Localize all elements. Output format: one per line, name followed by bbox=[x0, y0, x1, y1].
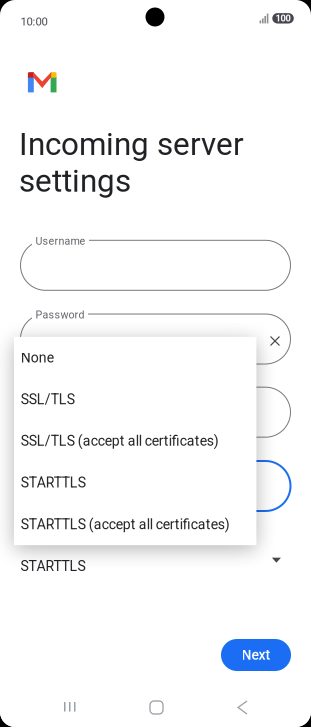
staticText: Incoming server bbox=[19, 126, 244, 163]
staticText: SSL/TLS (accept all certificates) bbox=[21, 433, 219, 449]
staticText: STARTTLS bbox=[20, 558, 85, 574]
button[interactable]: Recents bbox=[54, 692, 85, 721]
button[interactable]: None bbox=[14, 337, 256, 379]
staticText: STARTTLS (accept all certificates) bbox=[21, 516, 230, 533]
button[interactable]: STARTTLS bbox=[20, 548, 294, 588]
staticText: settings bbox=[19, 163, 131, 199]
staticText: Server bbox=[35, 382, 66, 394]
staticText: Next bbox=[241, 647, 270, 663]
button[interactable]: SSL/TLS bbox=[14, 379, 256, 420]
staticText: None bbox=[21, 349, 54, 366]
staticText: STARTTLS bbox=[21, 474, 86, 491]
button[interactable]: Close bbox=[267, 333, 283, 349]
button[interactable]: STARTTLS (accept all certificates) bbox=[14, 503, 256, 545]
button[interactable]: STARTTLS bbox=[14, 462, 256, 504]
staticText: SSL/TLS bbox=[21, 391, 75, 408]
button[interactable]: SSL/TLS (accept all certificates) bbox=[14, 420, 256, 462]
staticText: Password bbox=[35, 308, 84, 321]
staticText: 10:00 bbox=[20, 15, 47, 28]
button[interactable]: Next bbox=[221, 639, 291, 671]
button[interactable]: Home bbox=[140, 691, 173, 724]
button[interactable]: Back bbox=[228, 691, 258, 724]
staticText: Username bbox=[35, 235, 85, 247]
staticText: 100 bbox=[276, 13, 291, 24]
